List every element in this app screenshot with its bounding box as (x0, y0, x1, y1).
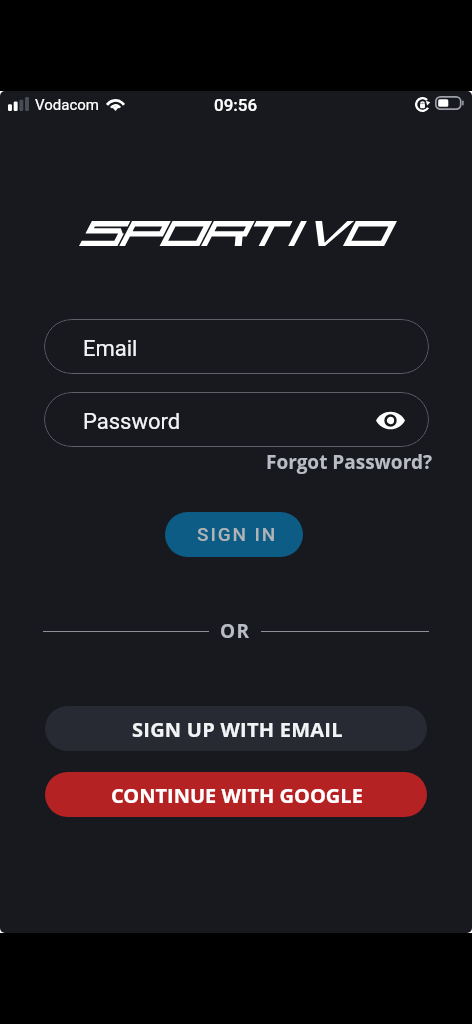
staticText: SIGN UP WITH EMAIL (132, 716, 343, 743)
staticText: Vodacom (35, 96, 99, 114)
staticText: Email (83, 336, 138, 362)
button[interactable]: Show password (371, 401, 409, 439)
button[interactable]: SIGN UP WITH EMAIL (45, 706, 427, 751)
staticText: CONTINUE WITH GOOGLE (111, 782, 363, 809)
staticText: 09:56 (214, 95, 258, 115)
button[interactable]: Forgot Password? (266, 449, 432, 475)
button[interactable]: Email (44, 319, 429, 374)
button[interactable]: CONTINUE WITH GOOGLE (45, 772, 427, 817)
button[interactable]: SIGN IN (165, 512, 303, 557)
staticText: SIGN IN (197, 523, 278, 545)
staticText: OR (220, 618, 251, 638)
button[interactable]: Password (44, 392, 429, 447)
staticText: Password (83, 409, 181, 435)
